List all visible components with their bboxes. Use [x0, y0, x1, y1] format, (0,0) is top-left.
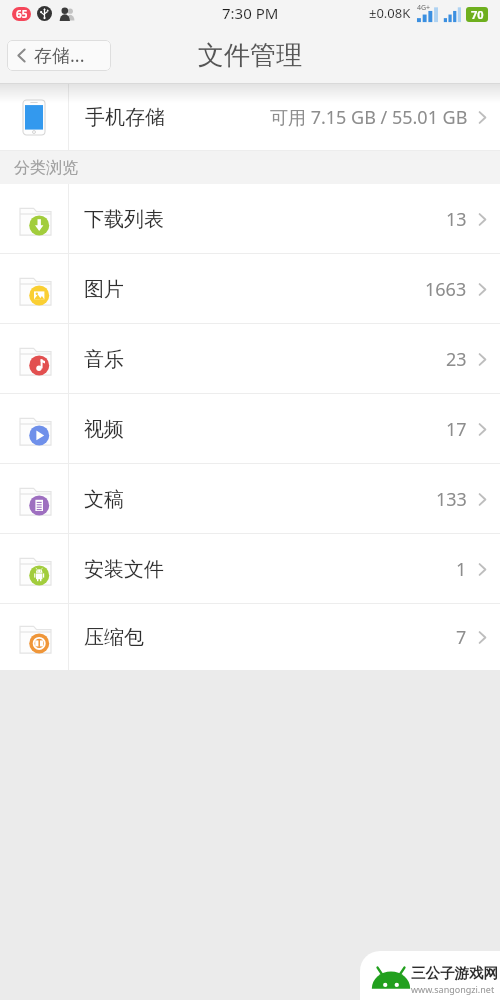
staticText: 音乐	[84, 347, 124, 372]
button[interactable]: 音乐	[0, 324, 500, 394]
staticText: 三公子游戏网	[411, 964, 498, 982]
staticText: 下载列表	[84, 207, 164, 232]
staticText: 图片	[84, 277, 124, 302]
staticText: 压缩包	[84, 625, 144, 650]
button[interactable]: 返回存储	[7, 40, 111, 71]
staticText: 存储...	[34, 43, 85, 68]
staticText: 7:30 PM	[222, 3, 279, 23]
staticText: 1	[456, 557, 467, 582]
staticText: 1663	[425, 277, 467, 302]
staticText: ±0.08K	[369, 4, 411, 22]
staticText: 安装文件	[84, 557, 164, 582]
staticText: 133	[436, 487, 467, 512]
staticText: 文稿	[84, 487, 124, 512]
staticText: 视频	[84, 417, 124, 442]
button[interactable]: 图片	[0, 254, 500, 324]
button[interactable]: 视频	[0, 394, 500, 464]
staticText: 文件管理	[198, 39, 302, 72]
staticText: 17	[446, 417, 467, 442]
button[interactable]: 压缩包	[0, 604, 500, 670]
staticText: 分类浏览	[14, 158, 78, 178]
button[interactable]: 下载列表	[0, 184, 500, 254]
staticText: 13	[446, 207, 467, 232]
staticText: www.sangongzi.net	[411, 983, 495, 995]
button[interactable]: 文稿	[0, 464, 500, 534]
staticText: 4G+	[417, 3, 431, 13]
staticText: 手机存储	[85, 105, 165, 130]
button[interactable]: 安装文件	[0, 534, 500, 604]
staticText: 可用 7.15 GB / 55.01 GB	[270, 105, 468, 130]
button[interactable]: 手机存储	[0, 84, 500, 151]
staticText: 7	[456, 625, 467, 650]
staticText: 70	[471, 7, 484, 22]
staticText: 65	[16, 7, 28, 21]
staticText: 23	[446, 347, 467, 372]
